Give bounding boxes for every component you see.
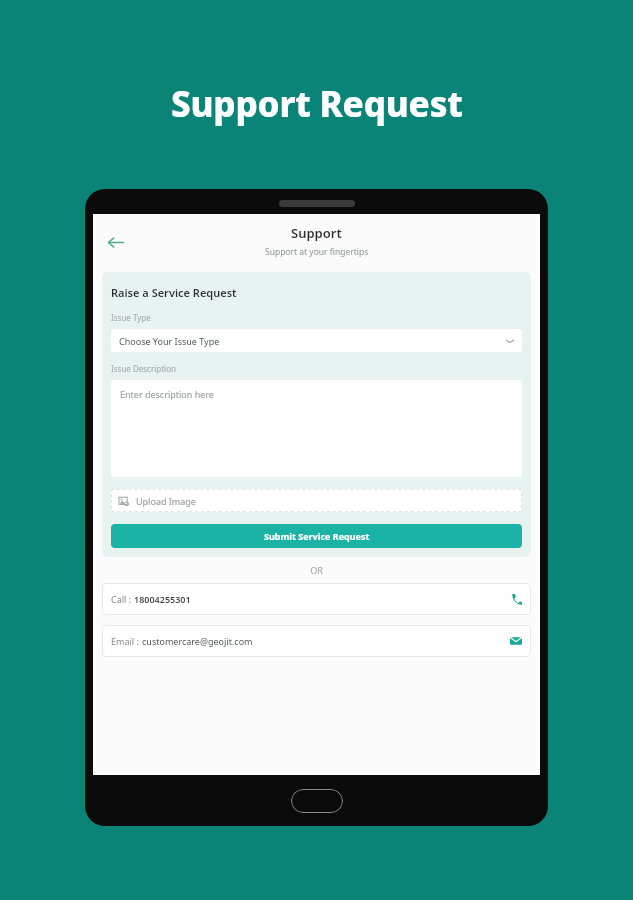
button[interactable]: Submit Service Request <box>111 524 522 548</box>
button[interactable]: Call : <box>102 583 531 615</box>
staticText: Email : <box>111 635 142 647</box>
staticText: Support Request <box>171 80 463 128</box>
staticText: Enter description here <box>120 388 214 400</box>
staticText: Raise a Service Request <box>111 285 237 300</box>
staticText: Issue Type <box>111 312 151 323</box>
button[interactable]: Email : <box>102 625 531 657</box>
staticText: Issue Description <box>111 363 176 374</box>
staticText: OR <box>310 564 323 576</box>
staticText: Choose Your Issue Type <box>119 335 220 347</box>
button[interactable]: Upload Image <box>111 489 522 512</box>
staticText: Support at your fingertips <box>265 246 369 258</box>
staticText: Support <box>291 224 342 242</box>
staticText: customercare@geojit.com <box>142 635 253 647</box>
button[interactable]: Enter description here <box>111 380 522 477</box>
staticText: Submit Service Request <box>264 530 370 542</box>
button[interactable]: Choose Your Issue Type <box>111 329 522 352</box>
staticText: Upload Image <box>136 495 196 507</box>
button[interactable]: Back <box>99 226 131 258</box>
staticText: Call : <box>111 593 134 605</box>
staticText: 18004255301 <box>134 593 191 605</box>
